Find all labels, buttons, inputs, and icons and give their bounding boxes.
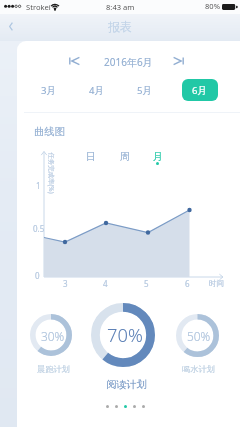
button[interactable]: 6月	[182, 79, 218, 101]
staticText: 5月	[137, 84, 153, 97]
staticText: 2016年6月	[104, 55, 153, 69]
staticText: 任务完成率(%)	[46, 152, 55, 194]
button[interactable]: Page 3	[124, 405, 127, 408]
button[interactable]: Page 2	[115, 405, 118, 408]
staticText: 曲线图	[34, 125, 65, 138]
button[interactable]: Page 4	[133, 405, 136, 408]
staticText: 80%	[205, 1, 220, 11]
staticText: 1	[36, 180, 41, 191]
button[interactable]: Page 5	[142, 405, 145, 408]
staticText: 0.5	[33, 223, 45, 234]
button[interactable]: Next month	[170, 54, 186, 68]
staticText: 4月	[89, 84, 105, 97]
staticText: 4	[103, 278, 108, 289]
staticText: 阅读计划	[106, 378, 147, 391]
staticText: 周	[120, 151, 130, 161]
staticText: Strokei	[26, 2, 51, 12]
button[interactable]	[176, 314, 219, 357]
staticText: 3月	[41, 84, 57, 97]
button[interactable]: Back	[0, 14, 26, 41]
staticText: 0	[35, 270, 40, 281]
staticText: 报表	[108, 19, 133, 34]
staticText: 6月	[192, 84, 208, 97]
button[interactable]	[91, 303, 155, 367]
staticText: 日	[86, 151, 96, 161]
button[interactable]: 月	[148, 146, 168, 168]
button[interactable]: 5月	[127, 79, 163, 101]
staticText: 8:43 am	[106, 2, 135, 12]
button[interactable]: 4月	[79, 79, 115, 101]
staticText: 6	[185, 278, 190, 289]
button[interactable]: Previous month	[66, 54, 82, 68]
staticText: 50%	[187, 328, 211, 344]
staticText: 月	[153, 151, 163, 161]
staticText: 喝水计划	[182, 364, 215, 374]
button[interactable]: 3月	[31, 79, 67, 101]
button[interactable]: 周	[115, 146, 135, 168]
button[interactable]: 日	[81, 146, 101, 168]
staticText: 30%	[41, 328, 65, 344]
staticText: 时间	[209, 279, 225, 289]
staticText: 5	[144, 278, 149, 289]
staticText: 70%	[107, 322, 143, 347]
button[interactable]: Page 1	[106, 405, 109, 408]
staticText: 晨跑计划	[37, 364, 70, 374]
button[interactable]	[30, 314, 72, 356]
staticText: 3	[63, 278, 68, 289]
